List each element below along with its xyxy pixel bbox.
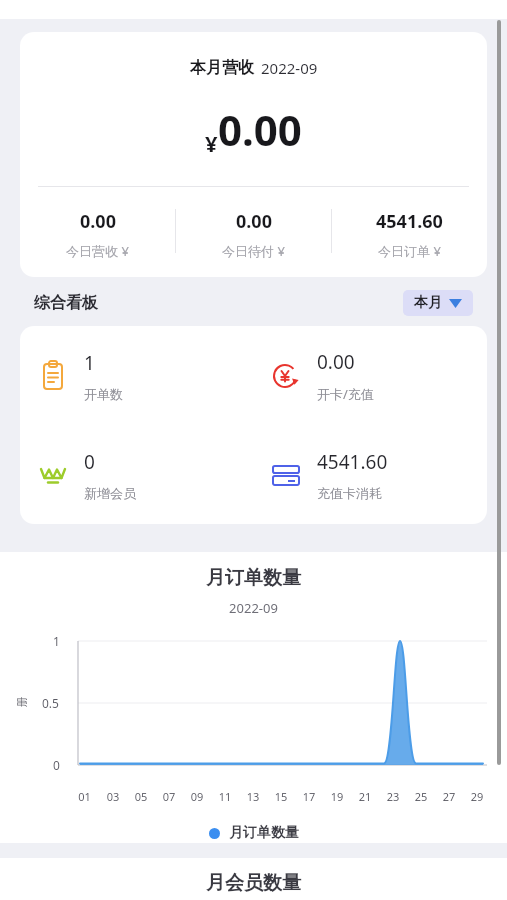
staticText: 29: [463, 789, 491, 804]
staticText: 本月营收: [190, 58, 254, 78]
button[interactable]: 本月: [403, 290, 473, 316]
staticText: 新增会员: [84, 485, 136, 501]
staticText: 23: [379, 789, 407, 804]
staticText: 0.00: [80, 209, 116, 234]
staticText: 4541.60: [317, 449, 388, 475]
staticText: 0.5: [42, 695, 59, 711]
staticText: 2022-09: [0, 599, 507, 617]
staticText: 13: [239, 789, 267, 804]
staticText: 25: [407, 789, 435, 804]
staticText: 今日营收 ¥: [66, 242, 129, 260]
staticText: 0.00: [236, 209, 272, 234]
button[interactable]: 0: [20, 425, 253, 524]
staticText: 今日待付 ¥: [222, 242, 285, 260]
staticText: 1: [53, 633, 60, 649]
staticText: 充值卡消耗: [317, 485, 382, 501]
staticText: 09: [183, 789, 211, 804]
staticText: 11: [211, 789, 239, 804]
button[interactable]: 1: [20, 326, 253, 425]
staticText: 册: [14, 696, 28, 707]
staticText: 0.00: [317, 349, 355, 375]
staticText: 开单数: [84, 386, 123, 402]
staticText: 月订单数量: [229, 824, 299, 842]
button[interactable]: 0.00: [176, 209, 331, 260]
button[interactable]: 4541.60: [253, 425, 487, 524]
staticText: 本月: [414, 294, 442, 312]
staticText: ¥: [205, 128, 218, 158]
staticText: 03: [99, 789, 127, 804]
staticText: 27: [435, 789, 463, 804]
staticText: 0: [84, 449, 95, 475]
button[interactable]: 0.00: [20, 209, 175, 260]
staticText: 1: [84, 350, 95, 376]
staticText: 2022-09: [261, 58, 318, 78]
staticText: 17: [295, 789, 323, 804]
button[interactable]: 4541.60: [332, 209, 487, 260]
staticText: 01: [70, 789, 99, 804]
staticText: 0.00: [218, 101, 302, 158]
staticText: 开卡/充值: [317, 385, 374, 403]
staticText: 综合看板: [34, 293, 98, 313]
staticText: 0: [53, 757, 60, 773]
staticText: 4541.60: [376, 209, 443, 234]
button[interactable]: 本月营收: [20, 32, 487, 277]
staticText: 15: [267, 789, 295, 804]
staticText: 07: [155, 789, 183, 804]
button[interactable]: 0.00: [253, 326, 487, 425]
staticText: 19: [323, 789, 351, 804]
staticText: 今日订单 ¥: [378, 242, 441, 260]
staticText: 月订单数量: [0, 566, 507, 590]
staticText: 月会员数量: [0, 871, 507, 895]
staticText: 05: [127, 789, 155, 804]
staticText: 21: [351, 789, 379, 804]
